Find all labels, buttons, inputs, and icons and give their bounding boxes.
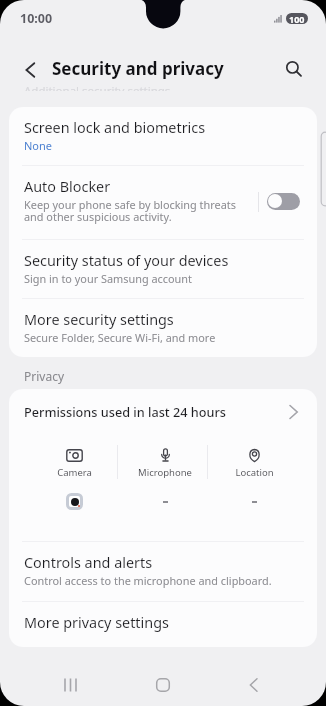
staticText: Privacy: [24, 368, 65, 384]
staticText: Screen lock and biometrics: [24, 118, 206, 138]
button[interactable]: Auto Blocker toggle: [267, 193, 300, 210]
button[interactable]: Recents: [43, 657, 99, 706]
staticText: Secure Folder, Secure Wi-Fi, and more: [24, 330, 216, 345]
button[interactable]: More privacy settings: [9, 601, 317, 647]
button[interactable]: Home: [135, 657, 191, 706]
staticText: More security settings: [24, 310, 174, 330]
staticText: Location: [235, 466, 274, 479]
button[interactable]: Location: [209, 449, 299, 513]
button[interactable]: Permissions used in last 24 hours: [9, 389, 317, 429]
staticText: 10:00: [20, 10, 53, 27]
staticText: Security status of your devices: [24, 251, 229, 271]
button[interactable]: Controls and alerts: [9, 541, 317, 601]
button[interactable]: Screen lock and biometrics: [9, 107, 317, 165]
staticText: Sign in to your Samsung account: [24, 271, 193, 286]
button[interactable]: Security status of your devices: [9, 239, 317, 298]
button[interactable]: Microphone: [120, 449, 210, 513]
button[interactable]: Back: [14, 54, 46, 86]
button[interactable]: Back: [226, 657, 282, 706]
staticText: Microphone: [138, 466, 192, 479]
button[interactable]: Auto Blocker: [9, 165, 317, 239]
staticText: Permissions used in last 24 hours: [24, 403, 227, 420]
button[interactable]: Search: [278, 54, 310, 86]
staticText: None: [24, 138, 53, 153]
staticText: 100: [289, 13, 305, 24]
staticText: Controls and alerts: [24, 553, 153, 573]
button[interactable]: More security settings: [9, 298, 317, 357]
button[interactable]: Camera: [29, 449, 119, 513]
staticText: Control access to the microphone and cli…: [24, 573, 272, 588]
staticText: Additional security settings: [24, 83, 171, 91]
staticText: Keep your phone safe by blocking threats…: [24, 197, 236, 224]
staticText: Camera: [57, 466, 92, 479]
staticText: Auto Blocker: [24, 177, 111, 197]
staticText: More privacy settings: [24, 613, 169, 633]
staticText: Security and privacy: [52, 57, 224, 80]
